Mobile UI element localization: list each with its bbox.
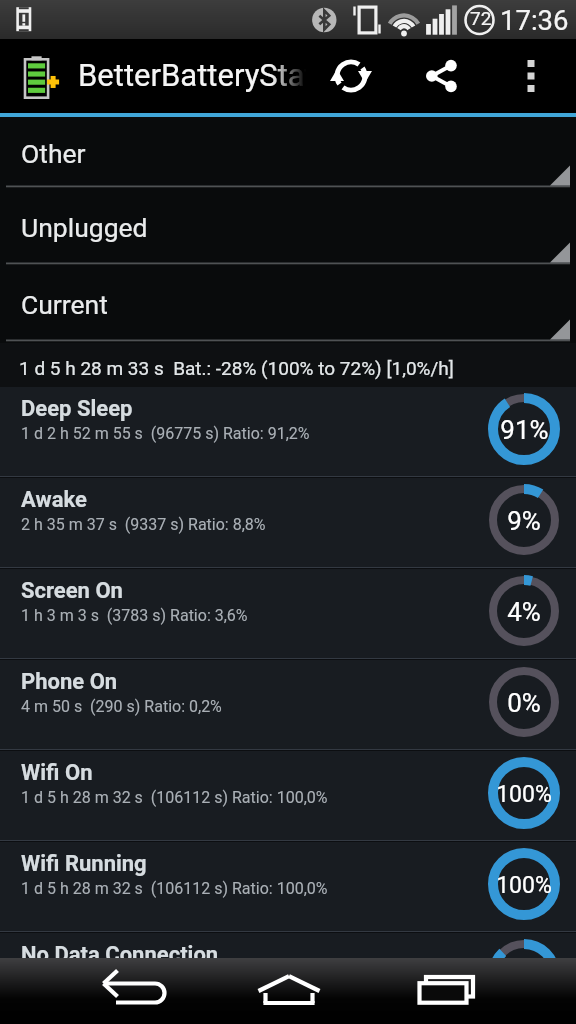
staticText: 17:36	[500, 4, 569, 36]
button[interactable]: Deep Sleep	[0, 387, 576, 476]
button[interactable]: Current	[0, 266, 576, 343]
button[interactable]: No Data Connection	[0, 933, 576, 1022]
staticText: 1 d 5 h 28 m 32 s (106112 s) Ratio: 100,…	[21, 788, 328, 807]
staticText: No Data Connection	[21, 942, 219, 968]
button[interactable]: Awake	[0, 478, 576, 567]
staticText: 100%	[496, 781, 552, 808]
button[interactable]: Wifi On	[0, 751, 576, 840]
staticText: Other	[21, 138, 86, 169]
staticText: 1 d 5 h 28 m 32 s (106112 s) Ratio: 100,…	[21, 879, 328, 898]
staticText: Current	[21, 289, 108, 320]
button[interactable]: Back	[0, 958, 192, 1024]
staticText: 0%	[507, 688, 541, 718]
button[interactable]: Other	[0, 117, 576, 189]
staticText: 4%	[507, 597, 541, 627]
button[interactable]: Refresh	[320, 39, 382, 113]
button[interactable]: Share	[410, 39, 472, 113]
staticText: 91%	[500, 415, 549, 445]
staticText: Phone On	[21, 669, 118, 695]
staticText: Screen On	[21, 578, 123, 604]
staticText: Unplugged	[21, 212, 148, 243]
staticText: BetterBatteryStats	[78, 57, 306, 93]
button[interactable]: More options	[500, 39, 562, 113]
staticText: Awake	[21, 487, 87, 513]
staticText: 88%	[500, 961, 549, 991]
staticText: 2 h 35 m 37 s (9337 s) Ratio: 8,8%	[21, 515, 266, 534]
staticText: 72	[470, 7, 492, 29]
staticText: 100%	[496, 872, 552, 899]
staticText: 1 d 5 h 28 m 33 s Bat.: -28% (100% to 72…	[19, 357, 454, 379]
staticText: Wifi Running	[21, 851, 147, 877]
staticText: Deep Sleep	[21, 396, 133, 422]
button[interactable]: Phone On	[0, 660, 576, 749]
staticText: 9%	[507, 506, 541, 536]
button[interactable]: Wifi Running	[0, 842, 576, 931]
staticText: 1 d 2 h 52 m 55 s (96775 s) Ratio: 91,2%	[21, 424, 310, 443]
staticText: 4 m 50 s (290 s) Ratio: 0,2%	[21, 697, 222, 716]
staticText: 1 d 5 h 28 m 32 s (106112 s) Ratio: 100,…	[21, 970, 328, 989]
button[interactable]: Unplugged	[0, 189, 576, 266]
staticText: Wifi On	[21, 760, 93, 786]
staticText: 1 h 3 m 3 s (3783 s) Ratio: 3,6%	[21, 606, 248, 625]
button[interactable]: Recents	[384, 958, 576, 1024]
button[interactable]: Home	[192, 958, 384, 1024]
button[interactable]: Screen On	[0, 569, 576, 658]
button[interactable]: BetterBatteryStats	[0, 39, 306, 113]
